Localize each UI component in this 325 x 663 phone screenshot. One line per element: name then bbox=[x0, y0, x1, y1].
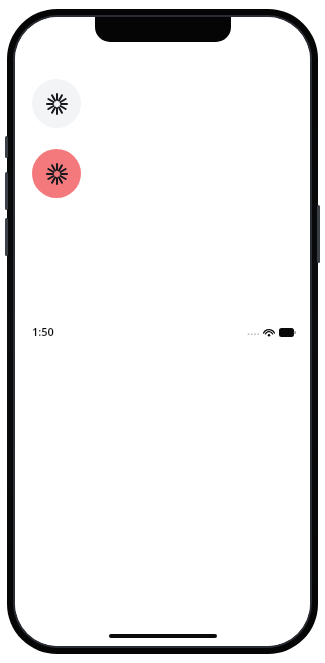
staticText: 1:50 bbox=[32, 324, 54, 339]
button[interactable]: Loading bbox=[32, 79, 81, 128]
button[interactable]: Loading, busy bbox=[32, 149, 81, 198]
